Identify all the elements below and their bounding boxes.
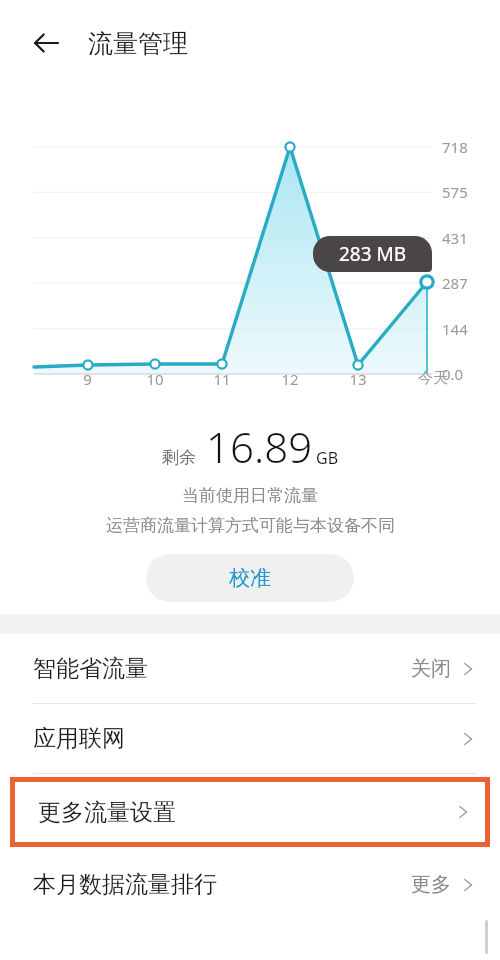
staticText: 144 xyxy=(442,319,468,339)
staticText: 流量管理 xyxy=(88,28,188,59)
staticText: 运营商流量计算方式可能与本设备不同 xyxy=(106,515,395,536)
staticText: 287 xyxy=(442,273,468,293)
staticText: 12 xyxy=(281,369,299,389)
staticText: 9 xyxy=(83,369,92,389)
staticText: 关闭 xyxy=(411,656,451,681)
staticText: 更多 xyxy=(411,872,451,897)
staticText: 431 xyxy=(442,228,468,248)
staticText: 718 xyxy=(442,137,468,157)
staticText: 剩余 xyxy=(162,447,196,468)
staticText: 更多流量设置 xyxy=(38,798,455,827)
staticText: 当前使用日常流量 xyxy=(182,485,318,506)
staticText: 今天 xyxy=(418,369,448,388)
button[interactable]: 校准 xyxy=(146,554,354,602)
staticText: 10 xyxy=(146,369,164,389)
staticText: 智能省流量 xyxy=(33,654,411,683)
staticText: 应用联网 xyxy=(33,724,460,753)
staticText: GB xyxy=(316,447,339,469)
button[interactable]: 智能省流量 xyxy=(0,634,500,703)
staticText: 本月数据流量排行 xyxy=(33,870,411,899)
staticText: 16.89 xyxy=(206,418,313,475)
button[interactable]: Back xyxy=(22,19,70,67)
staticText: 575 xyxy=(442,182,468,202)
staticText: 0.0 xyxy=(442,364,464,384)
button[interactable]: 应用联网 xyxy=(0,704,500,773)
button[interactable]: 更多流量设置 xyxy=(15,782,485,842)
staticText: 13 xyxy=(349,369,367,389)
button[interactable]: 本月数据流量排行 xyxy=(0,850,500,919)
staticText: 11 xyxy=(213,369,231,389)
staticText: 校准 xyxy=(229,565,271,591)
staticText: 283 MB xyxy=(339,241,407,267)
